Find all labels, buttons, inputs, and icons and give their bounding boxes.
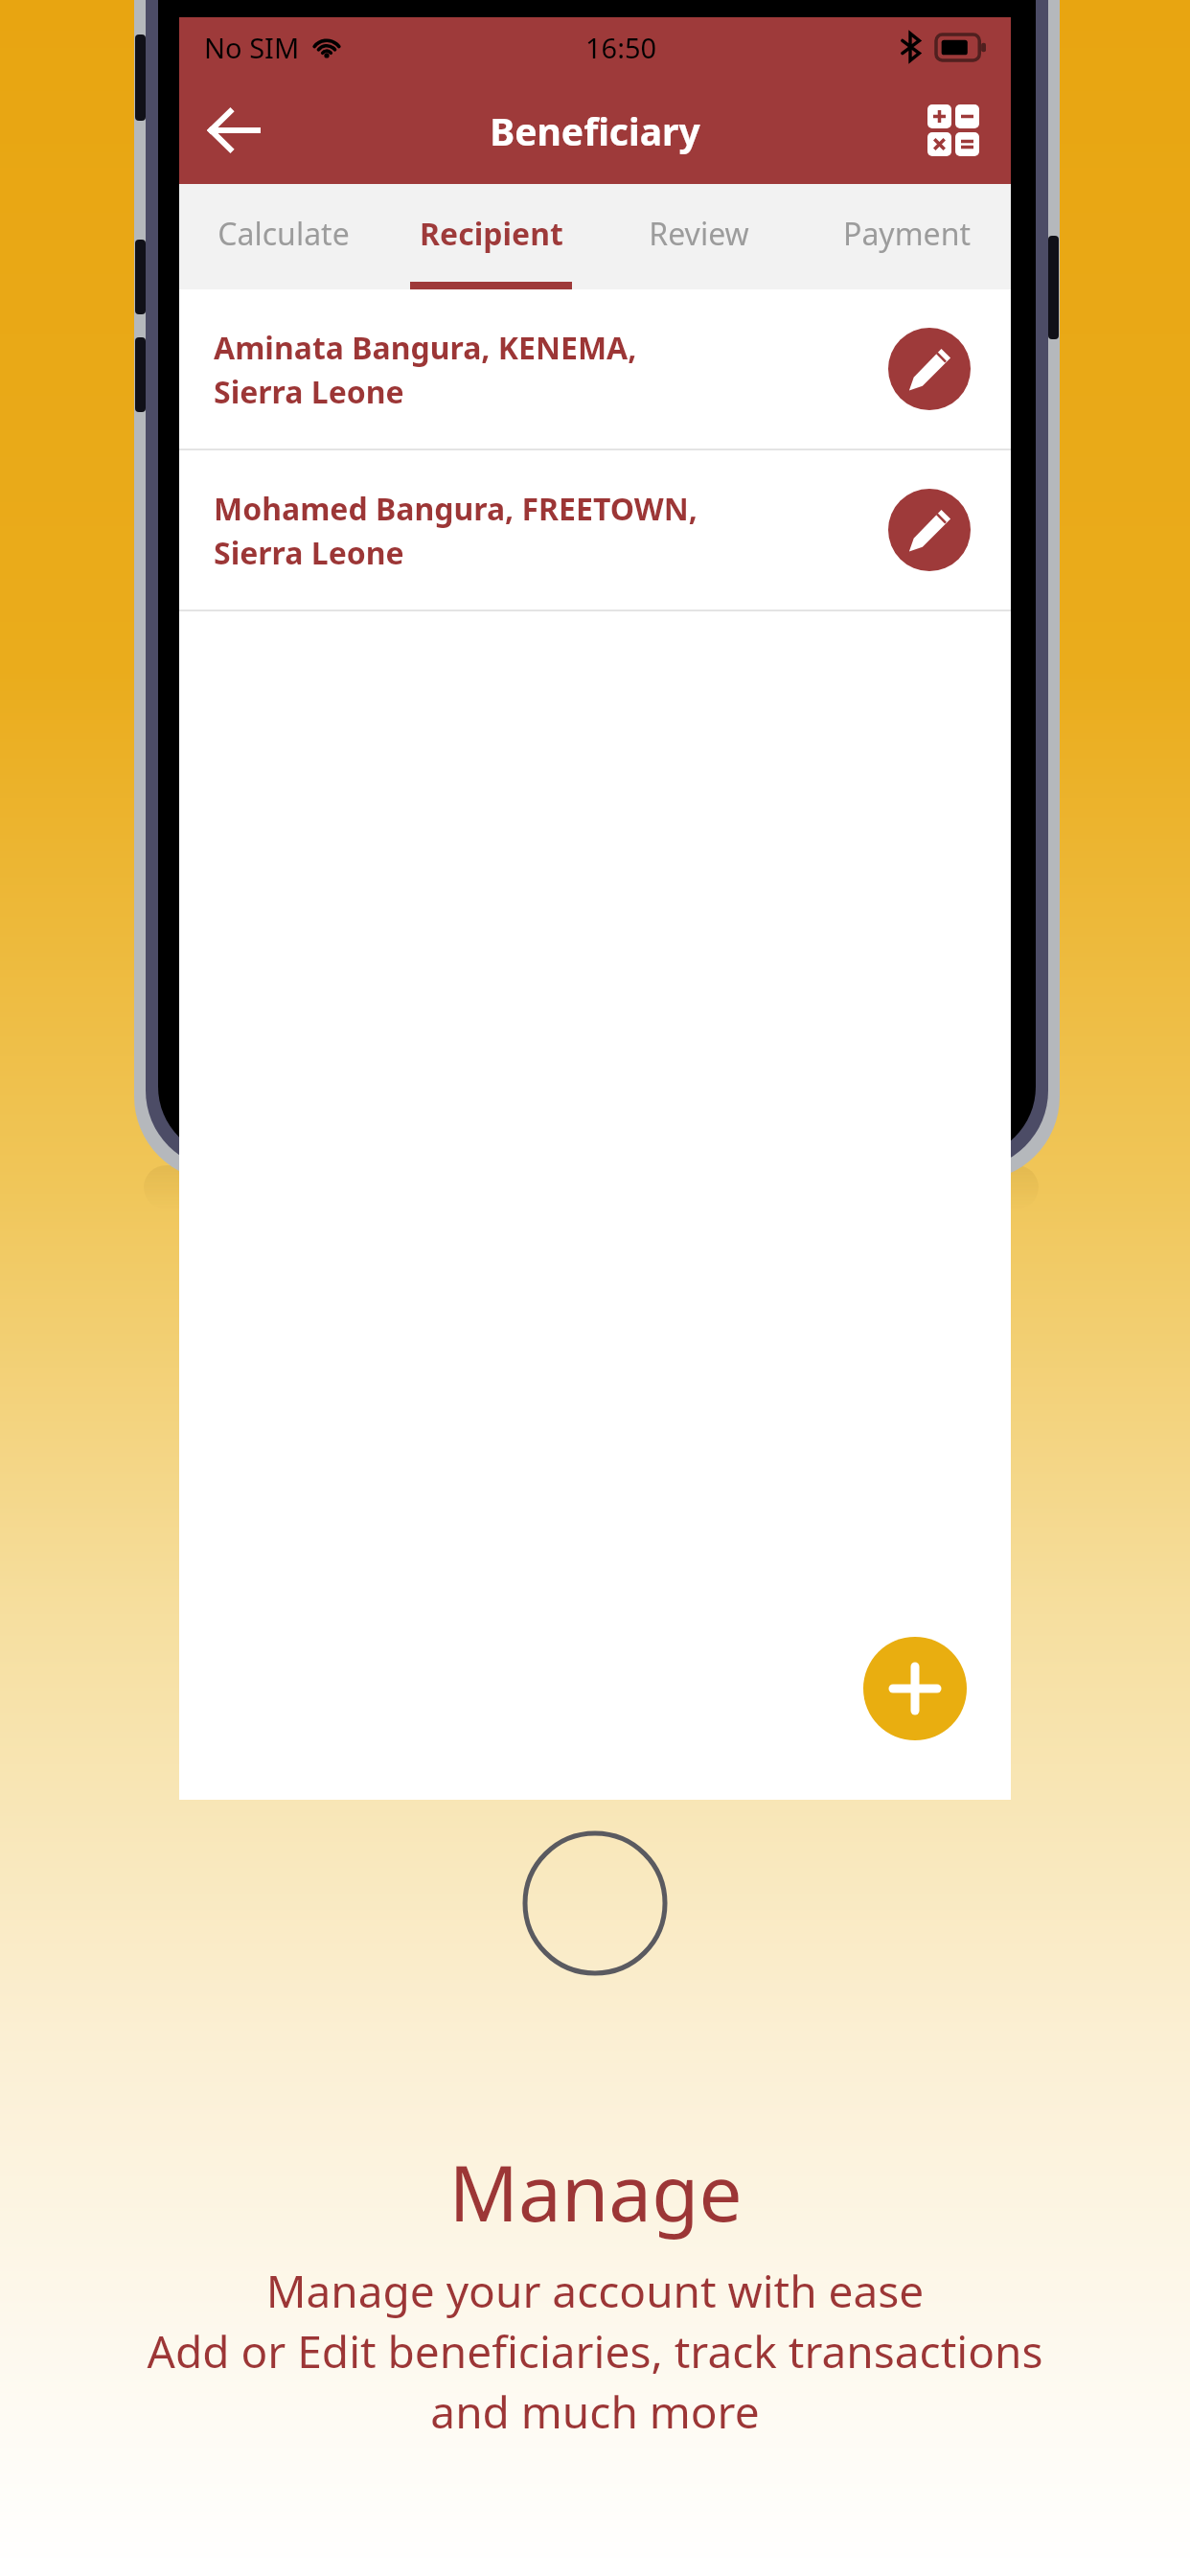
staticText: Recipient (420, 213, 563, 255)
staticText: Mohamed Bangura, FREETOWN, Sierra Leone (214, 488, 888, 573)
staticText: and much more (0, 2381, 1190, 2442)
button[interactable]: Review (595, 184, 803, 289)
button[interactable]: Recipient (387, 184, 595, 289)
staticText: Add or Edit beneficiaries, track transac… (0, 2321, 1190, 2381)
button[interactable]: Edit beneficiary (888, 489, 971, 571)
button[interactable]: Add beneficiary (863, 1637, 967, 1740)
button[interactable]: Aminata Bangura, KENEMA, Sierra Leone (179, 289, 1011, 448)
staticText: Manage (448, 2139, 743, 2243)
button[interactable]: Payment (803, 184, 1011, 289)
button[interactable]: Mohamed Bangura, FREETOWN, Sierra Leone (179, 450, 1011, 609)
button[interactable]: Edit beneficiary (888, 328, 971, 410)
button[interactable]: Calculator (917, 94, 990, 167)
staticText: 16:50 (585, 29, 657, 66)
staticText: Aminata Bangura, KENEMA, Sierra Leone (214, 327, 888, 412)
staticText: Payment (843, 213, 971, 255)
staticText: Beneficiary (490, 105, 700, 156)
staticText: Manage your account with ease (0, 2261, 1190, 2321)
button[interactable]: Calculate (179, 184, 387, 289)
staticText: Review (649, 213, 749, 255)
staticText: No SIM (204, 29, 300, 66)
button[interactable]: Back (191, 88, 275, 172)
staticText: Calculate (217, 213, 350, 255)
